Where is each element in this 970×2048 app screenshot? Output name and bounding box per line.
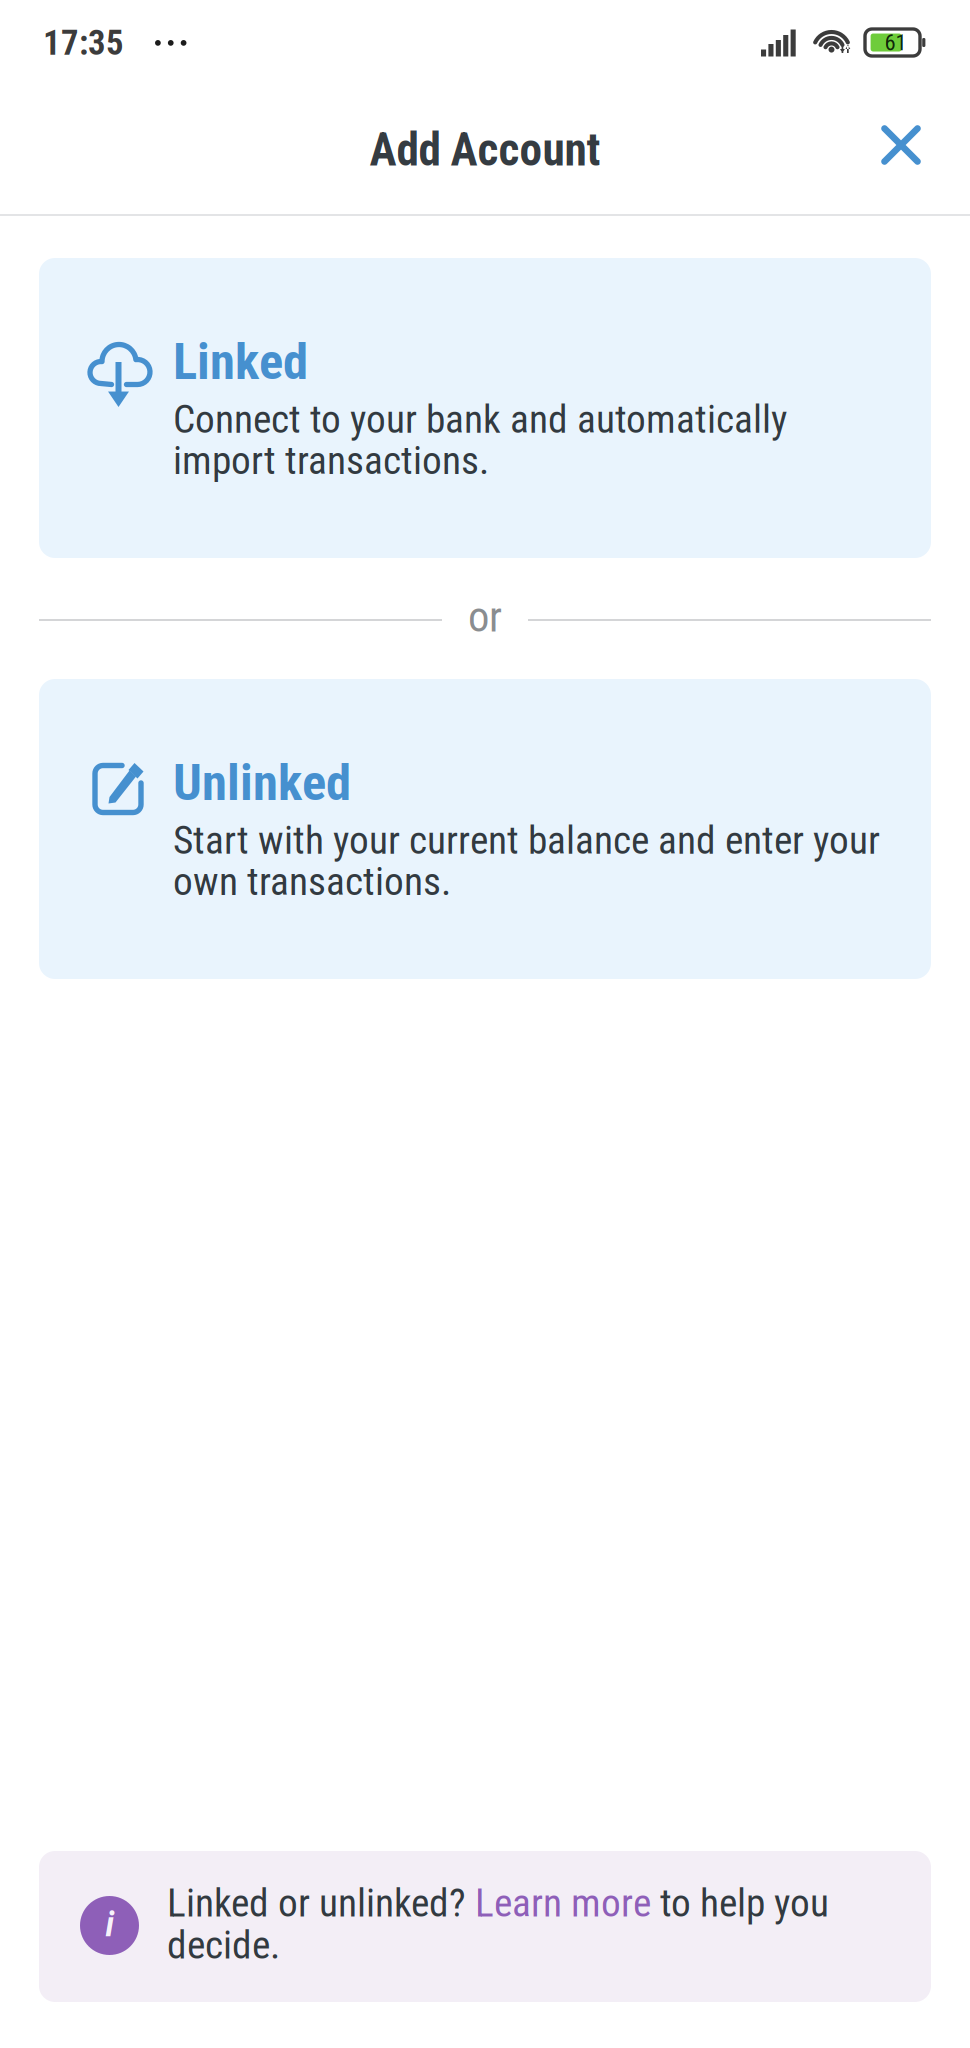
staticText: 17:35: [43, 23, 124, 63]
staticText: Unlinked: [173, 753, 351, 812]
button[interactable]: Unlinked: [39, 679, 931, 979]
staticText: i: [105, 1904, 113, 1945]
staticText: Connect to your bank and automatically i…: [173, 396, 787, 484]
staticText: Add Account: [369, 123, 600, 176]
staticText: decide.: [167, 1922, 280, 1968]
button[interactable]: Linked: [39, 258, 931, 558]
button[interactable]: Close: [858, 102, 944, 188]
button[interactable]: Learn more: [475, 1880, 651, 1926]
staticText: Learn more: [475, 1880, 651, 1926]
staticText: 61: [884, 29, 906, 56]
staticText: or: [468, 592, 502, 642]
staticText: Linked: [173, 332, 308, 391]
staticText: Start with your current balance and ente…: [173, 817, 880, 905]
staticText: Linked or unlinked?: [167, 1880, 475, 1926]
staticText: to help you: [651, 1880, 829, 1926]
